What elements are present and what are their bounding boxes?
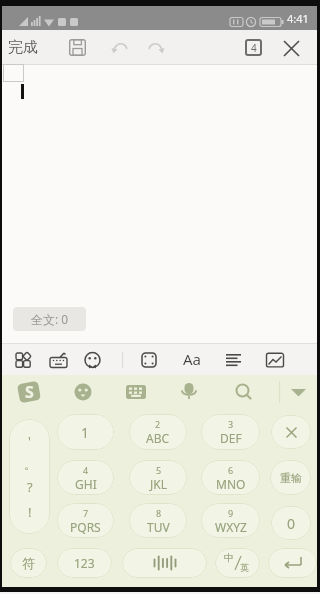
- button[interactable]: [78, 343, 114, 375]
- button[interactable]: [220, 343, 250, 375]
- button[interactable]: [279, 36, 303, 60]
- button[interactable]: [180, 375, 200, 409]
- staticText: 9: [228, 507, 234, 519]
- staticText: ?: [27, 478, 33, 496]
- staticText: TUV: [147, 519, 170, 535]
- button[interactable]: 完成: [5, 35, 41, 60]
- button[interactable]: [286, 375, 310, 409]
- staticText: 3: [228, 418, 234, 430]
- button[interactable]: 中: [215, 548, 260, 578]
- staticText: DEF: [220, 430, 242, 446]
- staticText: 符: [22, 555, 35, 571]
- button[interactable]: [124, 375, 148, 409]
- staticText: 123: [74, 555, 95, 571]
- staticText: 0: [287, 514, 296, 533]
- staticText: 英: [240, 562, 249, 573]
- button[interactable]: 5: [129, 460, 187, 495]
- button[interactable]: 7: [57, 503, 114, 538]
- staticText: Aa: [183, 349, 202, 369]
- staticText: 4: [83, 464, 89, 476]
- staticText: !: [28, 503, 32, 521]
- button[interactable]: 4: [245, 39, 262, 56]
- button[interactable]: ': [9, 419, 50, 534]
- button[interactable]: [114, 343, 154, 375]
- button[interactable]: [232, 375, 254, 409]
- button[interactable]: [122, 548, 207, 578]
- staticText: 5: [156, 464, 162, 476]
- button[interactable]: 9: [201, 503, 260, 538]
- staticText: 6: [228, 464, 234, 476]
- staticText: 1: [81, 423, 90, 442]
- button[interactable]: [143, 35, 168, 60]
- button[interactable]: 8: [129, 503, 187, 538]
- button[interactable]: 4: [57, 460, 114, 495]
- button[interactable]: 符: [10, 548, 47, 578]
- staticText: 2: [155, 418, 161, 430]
- staticText: 。: [24, 457, 36, 472]
- staticText: 重输: [280, 471, 302, 485]
- button[interactable]: 1: [57, 414, 114, 450]
- button[interactable]: 2: [129, 414, 187, 450]
- staticText: 全文: 0: [31, 311, 69, 327]
- staticText: JKL: [150, 476, 167, 492]
- button[interactable]: 重输: [270, 460, 311, 495]
- button[interactable]: S: [17, 381, 41, 403]
- staticText: 4: [251, 41, 257, 55]
- staticText: ABC: [146, 430, 170, 446]
- staticText: 7: [83, 507, 89, 519]
- button[interactable]: [268, 548, 317, 578]
- staticText: 8: [156, 507, 162, 519]
- button[interactable]: [271, 415, 311, 449]
- button[interactable]: 123: [57, 548, 112, 578]
- button[interactable]: [72, 375, 96, 409]
- button[interactable]: 6: [201, 460, 260, 495]
- button[interactable]: 0: [271, 506, 311, 540]
- staticText: 完成: [8, 38, 38, 57]
- button[interactable]: [2, 343, 42, 375]
- button[interactable]: 全文: 0: [13, 307, 86, 331]
- button[interactable]: 3: [201, 414, 260, 450]
- button[interactable]: [107, 35, 132, 60]
- staticText: PQRS: [70, 519, 101, 535]
- staticText: 中: [224, 551, 234, 564]
- staticText: 4:41: [287, 11, 309, 26]
- staticText: MNO: [216, 476, 246, 492]
- staticText: ': [28, 432, 31, 450]
- button[interactable]: [65, 35, 90, 60]
- button[interactable]: Aa: [178, 343, 206, 375]
- staticText: GHI: [75, 476, 97, 492]
- button[interactable]: [42, 343, 78, 375]
- staticText: WXYZ: [215, 519, 247, 535]
- staticText: S: [25, 381, 34, 403]
- button[interactable]: [260, 343, 290, 375]
